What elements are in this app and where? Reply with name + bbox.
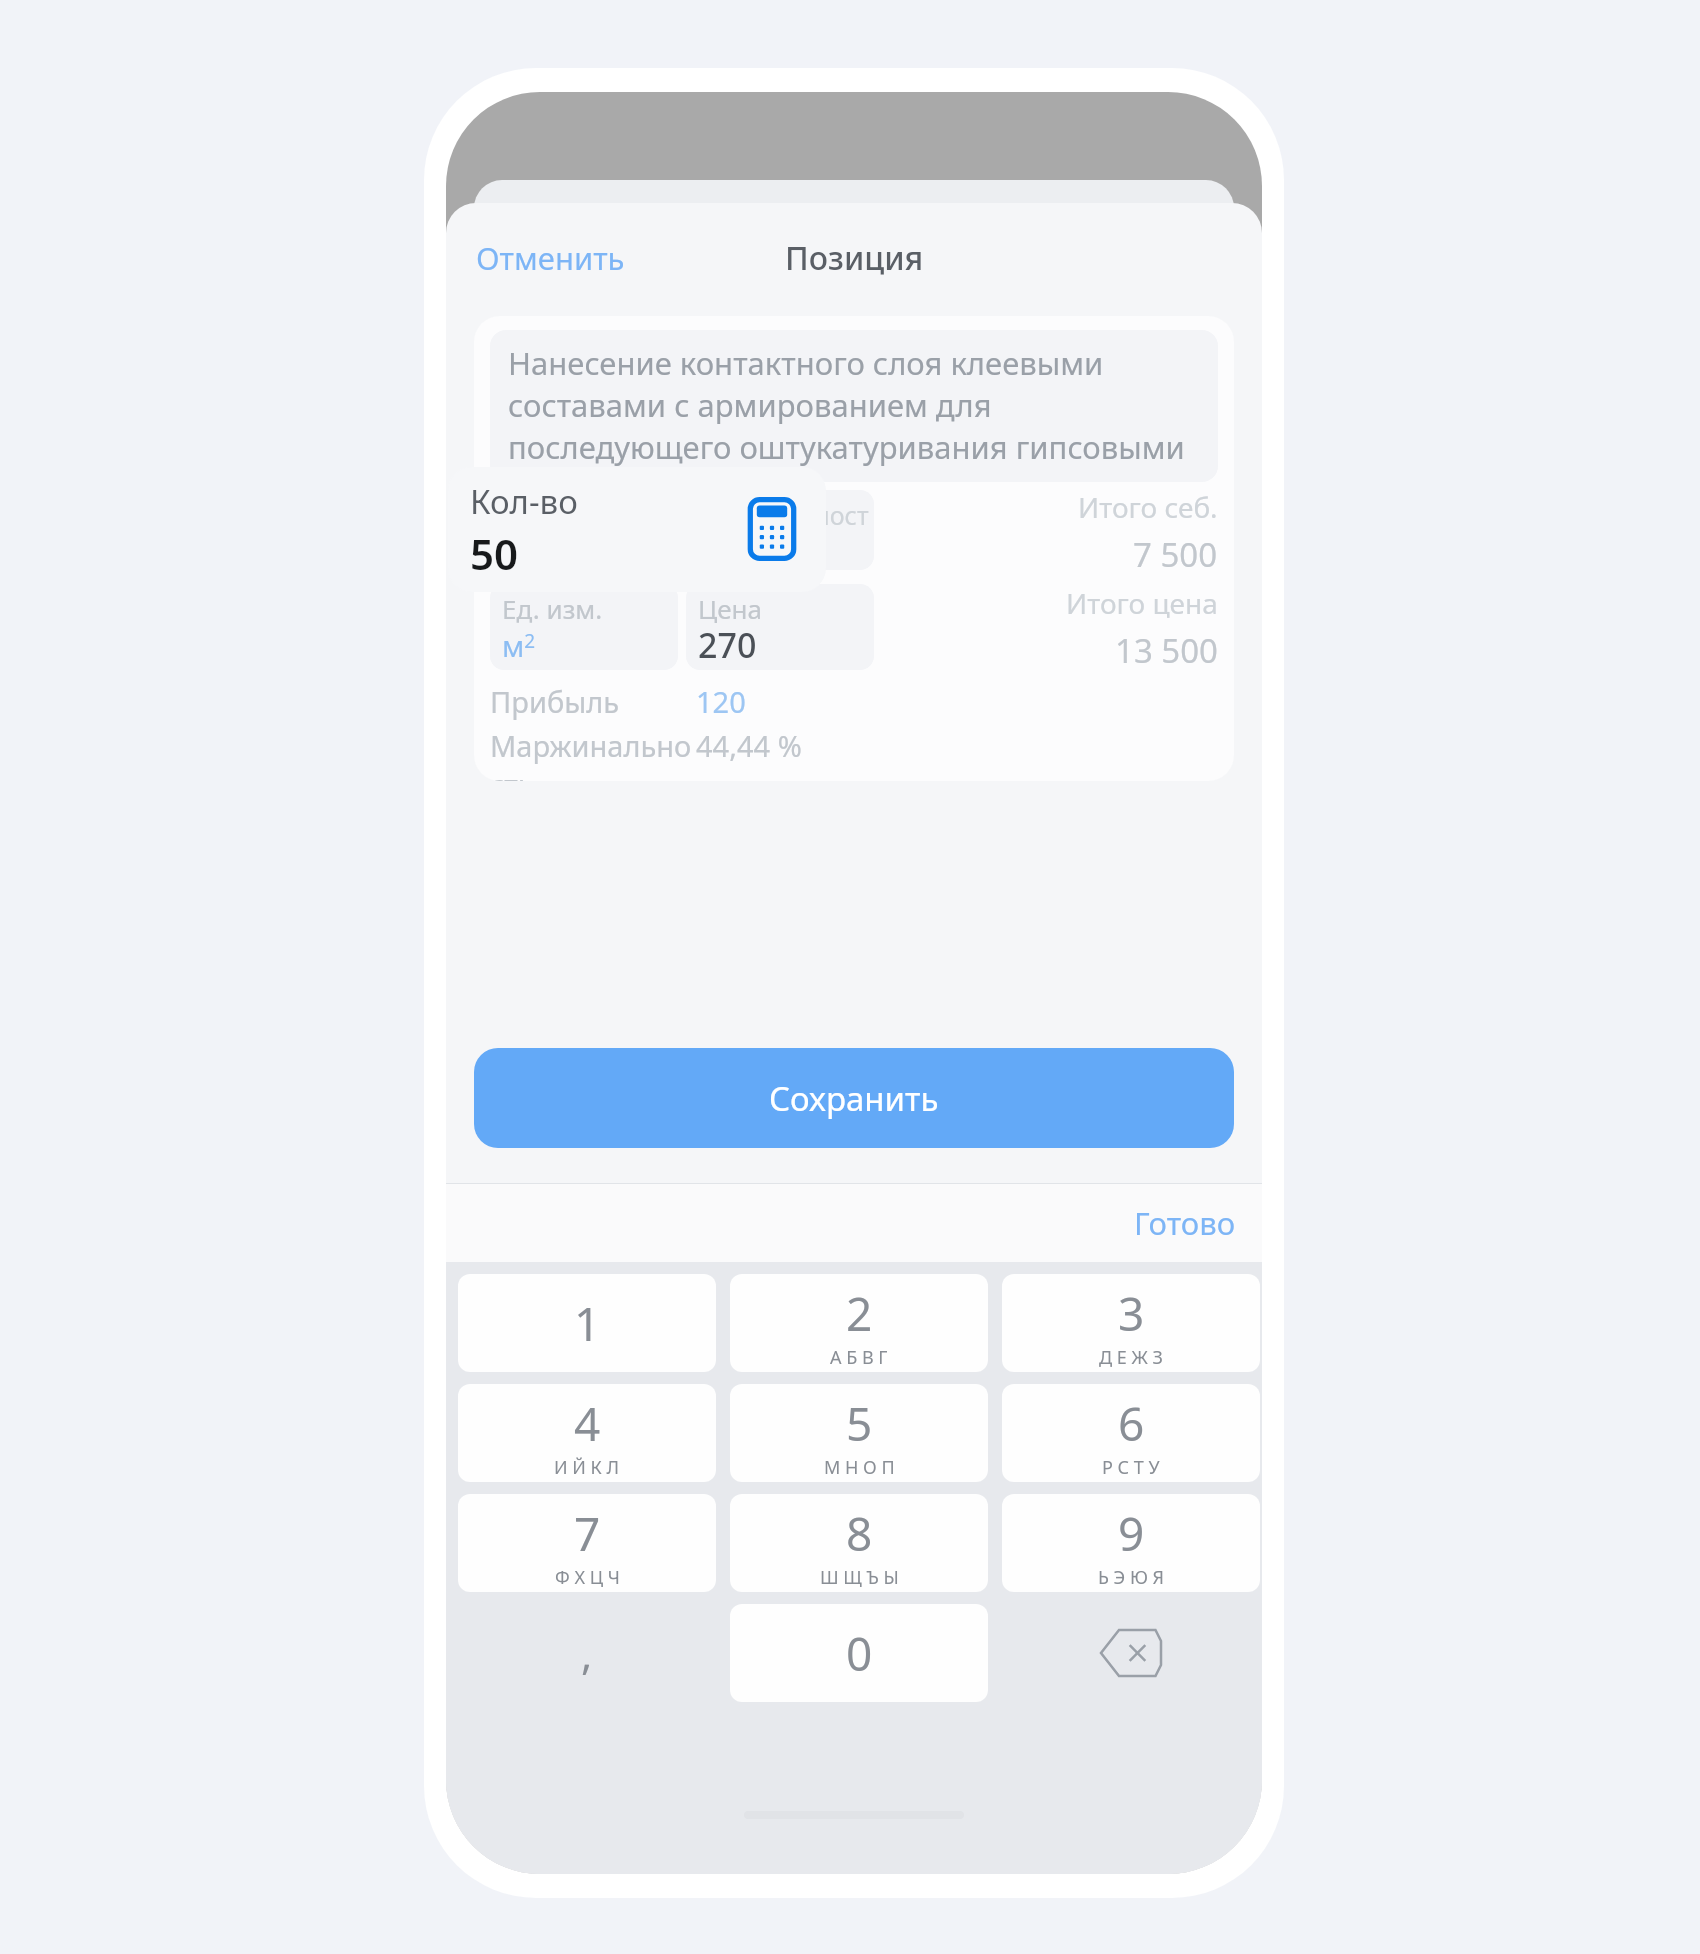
staticText: Сохранить — [769, 1076, 939, 1121]
staticText: 50 — [470, 525, 519, 582]
staticText: 1 — [574, 1292, 601, 1355]
staticText: Итого себ. — [1078, 488, 1218, 526]
button[interactable]: 0 — [730, 1604, 988, 1702]
staticText: Цена — [698, 591, 762, 626]
button[interactable]: Удалить — [1002, 1604, 1260, 1702]
staticText: И Й К Л — [554, 1455, 620, 1480]
staticText: 7 500 — [1133, 532, 1218, 577]
button[interactable]: 8 — [730, 1494, 988, 1592]
button[interactable]: , — [458, 1604, 716, 1702]
button[interactable]: 5 — [730, 1384, 988, 1482]
button[interactable]: Ед. изм. — [490, 584, 678, 670]
staticText: Прибыль — [490, 682, 696, 721]
button[interactable]: 7 — [458, 1494, 716, 1592]
staticText: М Н О П — [824, 1455, 895, 1480]
staticText: Ь Э Ю Я — [1098, 1565, 1165, 1590]
button[interactable]: Отменить — [468, 229, 633, 287]
staticText: 270 — [698, 622, 757, 668]
staticText: 0 — [846, 1622, 873, 1685]
staticText: Маржинальность — [490, 726, 696, 781]
staticText: Позиция — [785, 236, 924, 280]
staticText: 44,44 % — [696, 726, 802, 765]
staticText: 5 — [846, 1392, 873, 1455]
button[interactable]: 2 — [730, 1274, 988, 1372]
staticText: Р С Т У — [1102, 1455, 1160, 1480]
staticText: 120 — [696, 682, 746, 721]
staticText: Отменить — [476, 237, 625, 279]
button[interactable]: Цена — [686, 584, 874, 670]
button[interactable]: 3 — [1002, 1274, 1260, 1372]
staticText: 6 — [1118, 1392, 1145, 1455]
staticText: 4 — [574, 1392, 601, 1455]
staticText: 3 — [1118, 1282, 1145, 1345]
button[interactable] — [490, 490, 678, 570]
button[interactable]: Себестоимость — [686, 490, 874, 570]
staticText: Д Е Ж З — [1099, 1345, 1163, 1370]
button[interactable]: Кол-во — [448, 467, 826, 592]
staticText: Ш Щ Ъ Ы — [820, 1565, 899, 1590]
staticText: 7 — [574, 1502, 601, 1565]
staticText: 8 — [846, 1502, 873, 1565]
button[interactable]: Калькулятор — [732, 489, 812, 569]
staticText: Готово — [1134, 1202, 1236, 1244]
button[interactable]: 9 — [1002, 1494, 1260, 1592]
staticText: Итого цена — [1066, 584, 1218, 622]
staticText: м2 — [502, 626, 536, 665]
staticText: 2 — [846, 1282, 873, 1345]
button[interactable]: Нанесение контактного слоя клеевыми сост… — [490, 330, 1218, 482]
button[interactable]: 6 — [1002, 1384, 1260, 1482]
staticText: 9 — [1118, 1502, 1145, 1565]
staticText: Ед. изм. — [502, 591, 603, 626]
staticText: 13 500 — [1115, 628, 1218, 673]
button[interactable]: Сохранить — [474, 1048, 1234, 1148]
staticText: Кол-во — [470, 479, 578, 524]
staticText: А Б В Г — [830, 1345, 888, 1370]
button[interactable]: Готово — [1126, 1196, 1244, 1250]
staticText: Нанесение контактного слоя клеевыми сост… — [508, 342, 1206, 482]
button[interactable]: 1 — [458, 1274, 716, 1372]
staticText: , — [581, 1625, 593, 1682]
button[interactable]: 4 — [458, 1384, 716, 1482]
staticText: Ф Х Ц Ч — [555, 1565, 620, 1590]
staticText: Себестоимость — [698, 498, 874, 566]
